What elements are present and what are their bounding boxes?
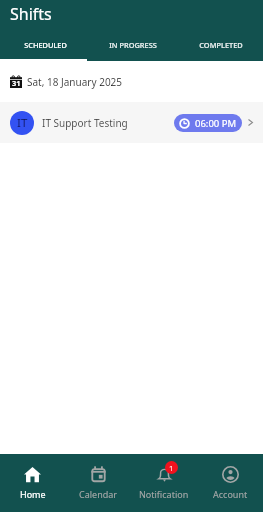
staticText: Account bbox=[213, 488, 248, 500]
button[interactable]: 1 bbox=[131, 454, 197, 512]
staticText: Home bbox=[20, 488, 46, 500]
staticText: IT Support Testing bbox=[42, 116, 128, 130]
staticText: Notification bbox=[139, 488, 189, 500]
button[interactable]: SCHEDULED bbox=[0, 33, 87, 61]
button[interactable]: COMPLETED bbox=[175, 33, 263, 61]
button[interactable]: Home bbox=[0, 454, 65, 512]
staticText: IT bbox=[17, 115, 28, 131]
button[interactable]: IT bbox=[0, 102, 263, 143]
staticText: Sat, 18 January 2025 bbox=[27, 75, 123, 89]
button[interactable]: Account bbox=[197, 454, 263, 512]
staticText: 06:00 PM bbox=[195, 117, 237, 130]
staticText: 31 bbox=[12, 78, 21, 88]
staticText: Calendar bbox=[79, 488, 117, 500]
staticText: IN PROGRESS bbox=[109, 40, 157, 50]
button[interactable]: Calendar bbox=[65, 454, 131, 512]
staticText: SCHEDULED bbox=[24, 40, 67, 50]
button[interactable]: IN PROGRESS bbox=[87, 33, 175, 61]
staticText: Shifts bbox=[10, 3, 52, 25]
staticText: 1 bbox=[169, 462, 174, 473]
staticText: COMPLETED bbox=[199, 40, 243, 50]
